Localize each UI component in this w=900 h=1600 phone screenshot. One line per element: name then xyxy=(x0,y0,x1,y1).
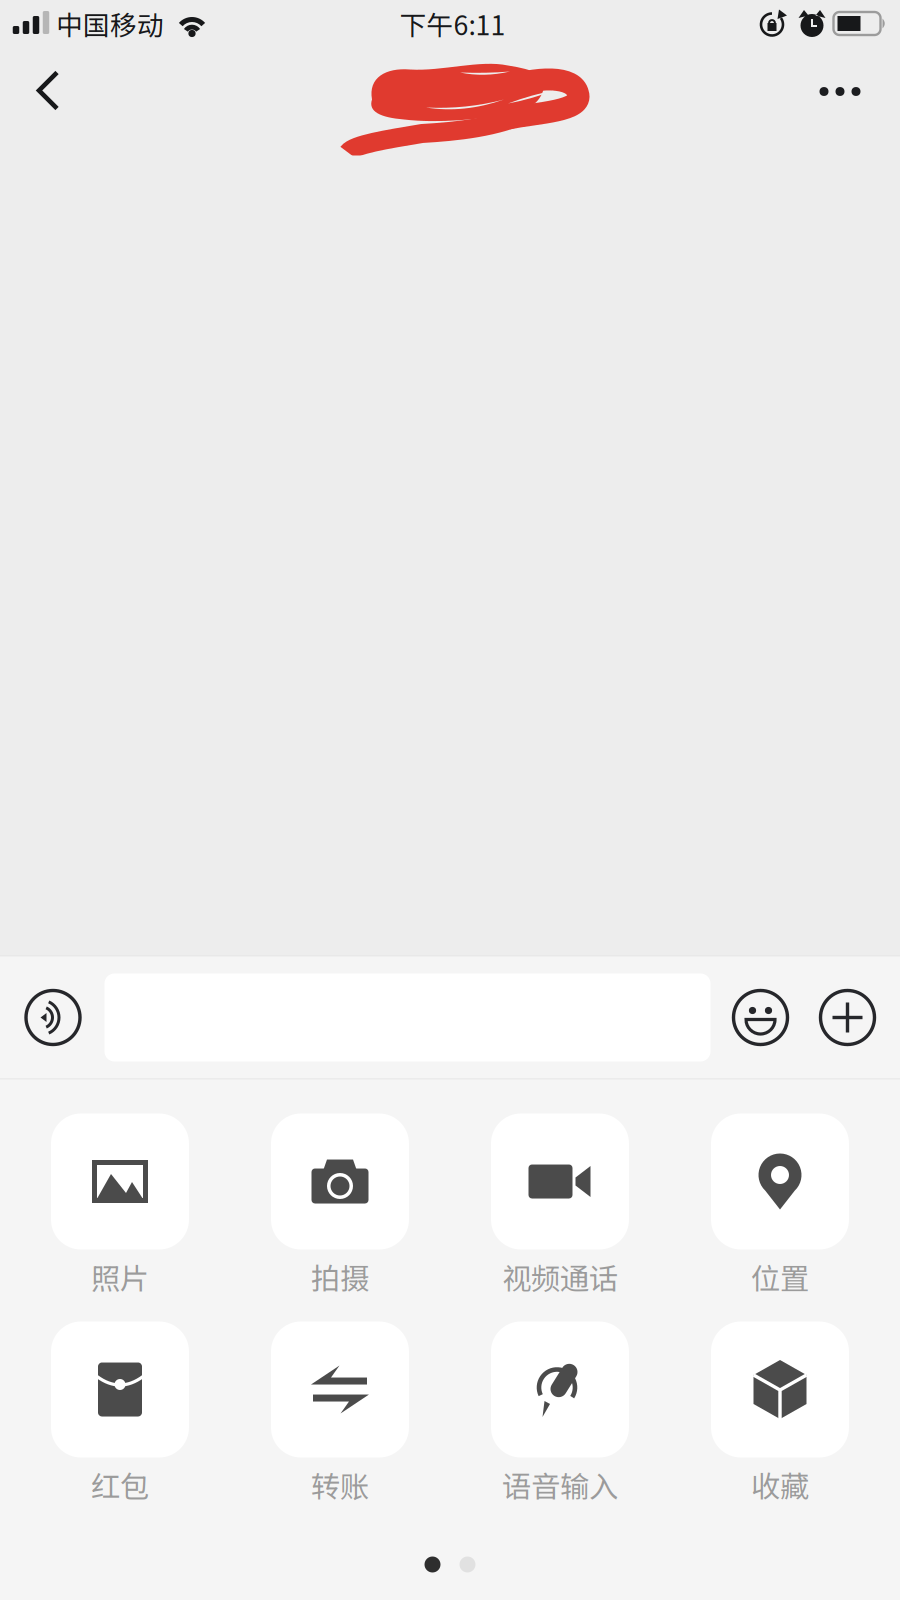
button[interactable]: 收藏 xyxy=(670,1321,890,1529)
staticText: 拍摄 xyxy=(311,1255,369,1298)
staticText: 语音输入 xyxy=(502,1463,618,1506)
staticText: 转账 xyxy=(311,1463,369,1506)
button[interactable]: 位置 xyxy=(670,1113,890,1321)
button[interactable]: More xyxy=(808,55,900,155)
staticText: 视频通话 xyxy=(502,1255,618,1298)
staticText: 收藏 xyxy=(751,1463,809,1506)
staticText: 中国移动 xyxy=(56,4,164,43)
button[interactable]: Emoji xyxy=(710,956,810,1078)
button[interactable]: More attachments xyxy=(803,956,891,1078)
button[interactable]: 红包 xyxy=(10,1321,230,1529)
staticText: 红包 xyxy=(91,1463,149,1506)
button[interactable]: 语音输入 xyxy=(450,1321,670,1529)
button[interactable]: 视频通话 xyxy=(450,1113,670,1321)
button[interactable]: Voice message xyxy=(1,956,104,1078)
staticText: 下午6:11 xyxy=(399,4,505,43)
button[interactable]: 照片 xyxy=(10,1113,230,1321)
staticText: 位置 xyxy=(751,1255,809,1298)
button[interactable]: 转账 xyxy=(230,1321,450,1529)
button[interactable]: 拍摄 xyxy=(230,1113,450,1321)
staticText: 照片 xyxy=(91,1255,149,1298)
button[interactable]: Back xyxy=(0,55,92,155)
